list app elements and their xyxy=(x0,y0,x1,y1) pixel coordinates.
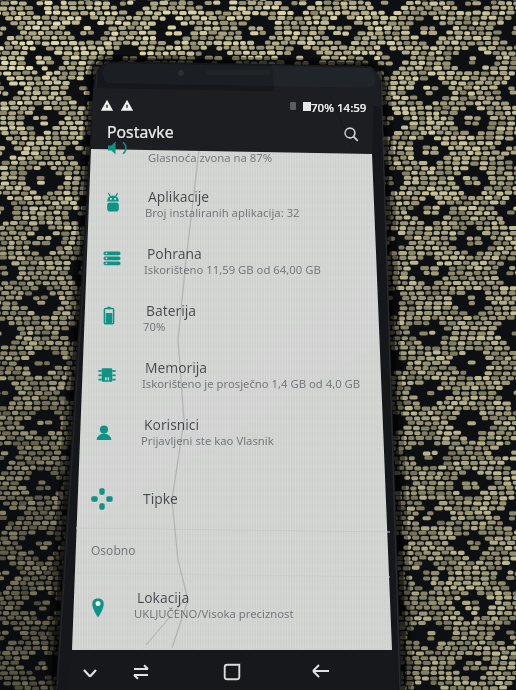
staticText: Pohrana xyxy=(147,244,202,263)
button[interactable] xyxy=(80,176,388,233)
staticText: Osobno xyxy=(91,542,136,558)
staticText: Baterija xyxy=(146,301,197,320)
staticText: UKLJUČENO/Visoka preciznost xyxy=(134,606,294,621)
staticText: Aplikacije xyxy=(148,187,210,206)
button[interactable] xyxy=(80,404,388,461)
staticText: Korisnici xyxy=(144,415,200,434)
staticText: Tipke xyxy=(143,489,178,508)
button[interactable] xyxy=(80,290,388,347)
button[interactable]: Search xyxy=(335,118,367,150)
staticText: Postavke xyxy=(107,121,174,143)
button[interactable]: Recent apps xyxy=(206,652,256,690)
staticText: Iskorišteno je prosječno 1,4 GB od 4,0 G… xyxy=(142,376,361,391)
button[interactable]: Hide keyboard xyxy=(70,652,116,690)
staticText: 70% xyxy=(311,100,334,116)
staticText: Iskorišteno 11,59 GB od 64,00 GB xyxy=(144,262,321,277)
button[interactable] xyxy=(80,233,388,290)
staticText: Prijavljeni ste kao Vlasnik xyxy=(141,433,274,448)
button[interactable]: Back xyxy=(296,652,346,690)
button[interactable] xyxy=(80,578,388,648)
staticText: Lokacija xyxy=(137,588,190,607)
staticText: Broj instaliranih aplikacija: 32 xyxy=(145,205,300,220)
staticText: 14:59 xyxy=(337,100,367,116)
button[interactable] xyxy=(80,347,388,404)
staticText: Glasnoća zvona na 87% xyxy=(148,150,273,165)
staticText: Memorija xyxy=(145,358,208,377)
staticText: 70% xyxy=(143,319,166,334)
button[interactable]: Switch input method xyxy=(122,652,170,690)
button[interactable] xyxy=(80,472,388,528)
